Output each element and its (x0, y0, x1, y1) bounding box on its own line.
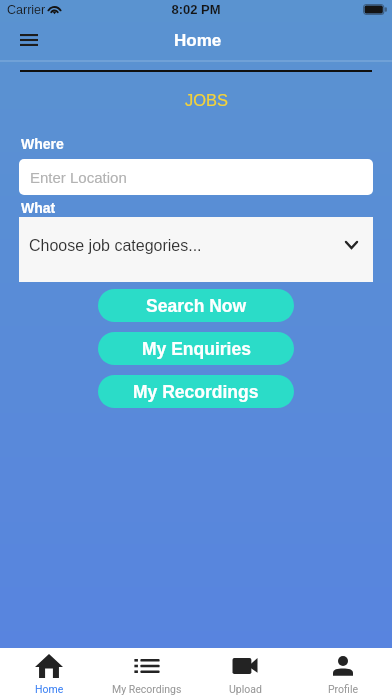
staticText: 8:02 PM (0, 2, 392, 17)
button[interactable]: Search Now (98, 289, 294, 322)
staticText: Upload (229, 683, 262, 695)
staticText: My Enquiries (142, 339, 251, 359)
staticText: My Recordings (133, 382, 259, 402)
other: Battery full (363, 4, 387, 15)
button[interactable]: Enter Location (19, 159, 373, 195)
staticText: Home (174, 31, 222, 50)
staticText: Where (21, 136, 64, 152)
staticText: Enter Location (30, 169, 127, 186)
staticText: Carrier (7, 3, 46, 17)
button[interactable]: Upload (196, 648, 294, 696)
staticText: Profile (328, 683, 359, 695)
button[interactable]: My Enquiries (98, 332, 294, 365)
button[interactable]: Open navigation menu (11, 22, 47, 58)
staticText: What (21, 200, 56, 216)
staticText: Home (35, 683, 64, 695)
staticText: JOBS (185, 91, 229, 109)
button[interactable]: My Recordings (98, 648, 196, 696)
button[interactable]: My Recordings (98, 375, 294, 408)
staticText: My Recordings (112, 683, 182, 695)
button[interactable]: Profile (294, 648, 392, 696)
staticText: Search Now (146, 296, 247, 316)
button[interactable]: Home (0, 648, 98, 696)
other: Wi-Fi signal (47, 4, 62, 14)
button[interactable]: Choose job categories... (19, 217, 373, 282)
staticText: Choose job categories... (29, 237, 202, 255)
